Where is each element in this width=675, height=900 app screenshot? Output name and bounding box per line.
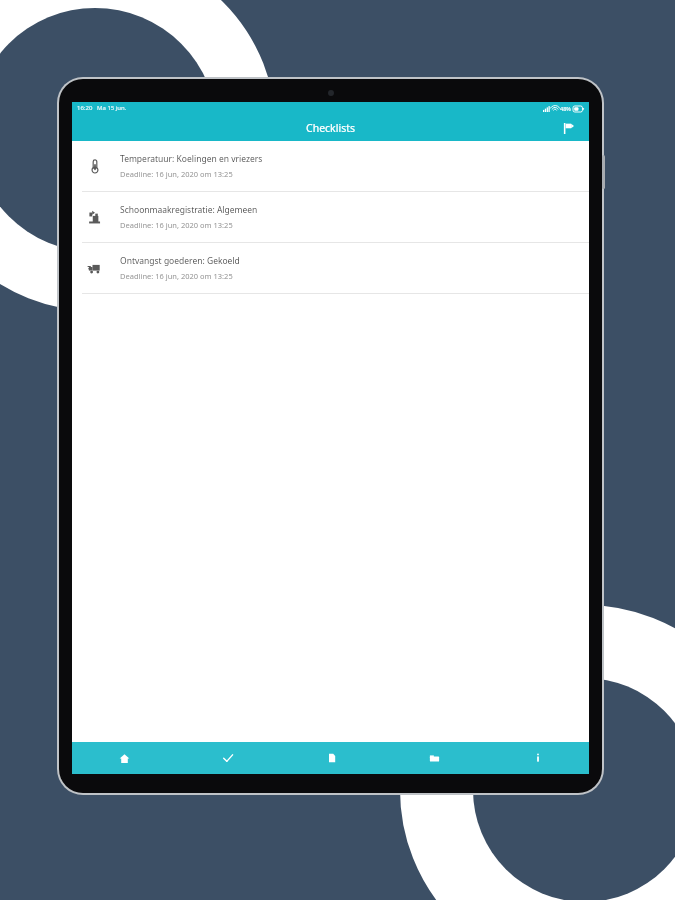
staticText: 16:20 Ma 15 jun.: [77, 104, 127, 112]
button[interactable]: Flag: [557, 117, 579, 139]
button[interactable]: Ontvangst goederen: Gekoeld: [72, 243, 589, 293]
button[interactable]: Folders: [383, 742, 486, 774]
button[interactable]: Documents: [280, 742, 383, 774]
staticText: Deadline: 16 jun, 2020 om 13:25: [120, 271, 233, 281]
staticText: Schoonmaakregistratie: Algemeen: [120, 204, 258, 216]
staticText: Deadline: 16 jun, 2020 om 13:25: [120, 220, 233, 230]
staticText: Deadline: 16 jun, 2020 om 13:25: [120, 169, 233, 179]
staticText: Ontvangst goederen: Gekoeld: [120, 255, 240, 267]
button[interactable]: Tasks: [176, 742, 280, 774]
staticText: Temperatuur: Koelingen en vriezers: [120, 153, 263, 165]
button[interactable]: Schoonmaakregistratie: Algemeen: [72, 192, 589, 242]
button[interactable]: Home: [72, 742, 176, 774]
button[interactable]: Temperatuur: Koelingen en vriezers: [72, 141, 589, 191]
button[interactable]: More: [486, 742, 589, 774]
staticText: 48%: [560, 105, 571, 112]
staticText: Checklists: [306, 121, 355, 135]
